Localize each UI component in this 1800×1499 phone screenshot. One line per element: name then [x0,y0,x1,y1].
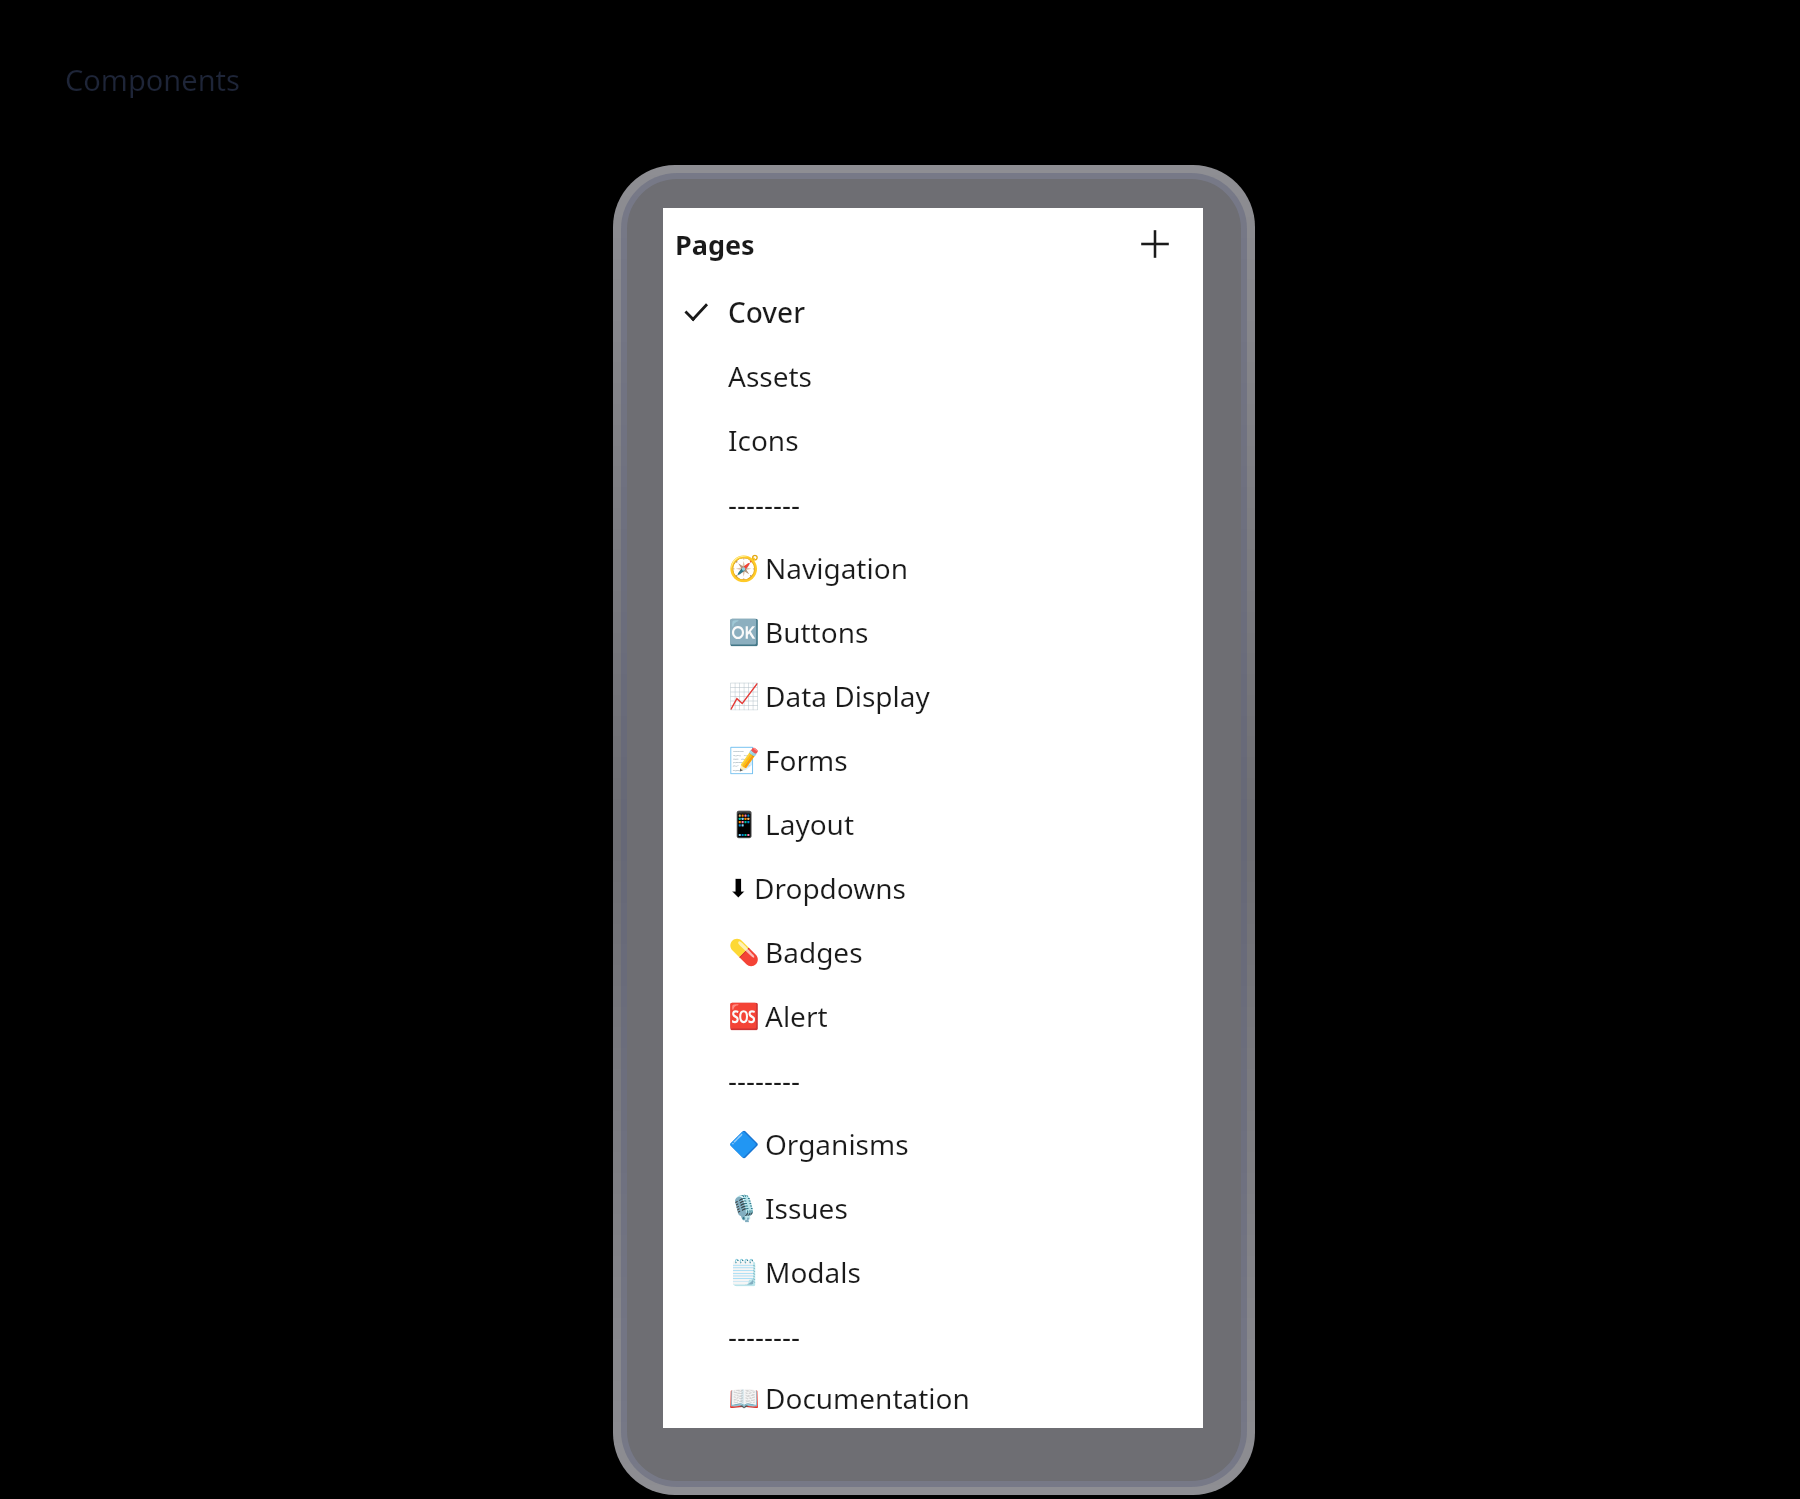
button[interactable]: 🆗 [663,600,1203,664]
staticText: 💊 [728,938,760,967]
button[interactable]: -------- [663,1048,1203,1112]
staticText: 🧭 [728,554,760,583]
button[interactable]: 🔷 [663,1112,1203,1176]
staticText: 📱 [728,810,760,839]
staticText: -------- [728,485,801,523]
button[interactable]: -------- [663,472,1203,536]
staticText: Navigation [765,549,908,587]
staticText: Layout [765,805,855,843]
button[interactable]: 📱 [663,792,1203,856]
button[interactable]: 📈 [663,664,1203,728]
staticText: 🆘 [728,1002,760,1031]
button[interactable]: Icons [663,408,1203,472]
button[interactable]: -------- [663,1304,1203,1368]
staticText: Dropdowns [754,869,906,907]
button[interactable]: 🆘 [663,984,1203,1048]
staticText: 📈 [728,682,760,711]
staticText: Organisms [765,1125,909,1163]
button[interactable]: 📖 [663,1368,1203,1428]
button[interactable]: Add page [1133,222,1177,266]
button[interactable]: ⬇️ [663,856,1203,920]
button[interactable]: 🗒️ [663,1240,1203,1304]
button[interactable]: Assets [663,344,1203,408]
staticText: Badges [765,933,863,971]
button[interactable]: 🎙️ [663,1176,1203,1240]
staticText: Assets [728,357,813,395]
button[interactable]: 🧭 [663,536,1203,600]
staticText: Components [65,60,240,99]
button[interactable]: 📝 [663,728,1203,792]
staticText: 🆗 [728,618,760,647]
button[interactable]: 💊 [663,920,1203,984]
staticText: ⬇️ [728,874,749,903]
staticText: 🎙️ [728,1194,760,1223]
button[interactable]: Cover [663,280,1203,344]
staticText: Icons [728,421,799,459]
staticText: Data Display [765,677,930,715]
staticText: Documentation [765,1379,970,1417]
staticText: -------- [728,1317,801,1355]
staticText: 📝 [728,746,760,775]
staticText: -------- [728,1061,801,1099]
staticText: 🗒️ [728,1258,760,1287]
staticText: 🔷 [728,1130,760,1159]
staticText: Pages [675,226,755,263]
staticText: Cover [728,293,806,331]
staticText: Modals [765,1253,861,1291]
staticText: 📖 [728,1384,760,1413]
staticText: Issues [765,1189,848,1227]
staticText: Alert [765,997,828,1035]
staticText: Forms [765,741,848,779]
staticText: Buttons [765,613,869,651]
